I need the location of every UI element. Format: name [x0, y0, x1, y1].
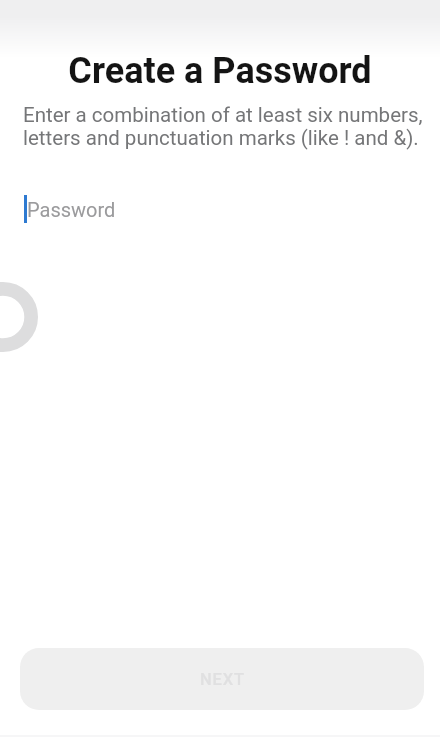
button[interactable]: Password [24, 189, 440, 229]
staticText: NEXT [200, 670, 245, 689]
staticText: Password [27, 198, 116, 221]
staticText: Create a Password [0, 50, 440, 92]
other: Loading [0, 282, 38, 352]
staticText: Enter a combination of at least six numb… [23, 103, 423, 150]
